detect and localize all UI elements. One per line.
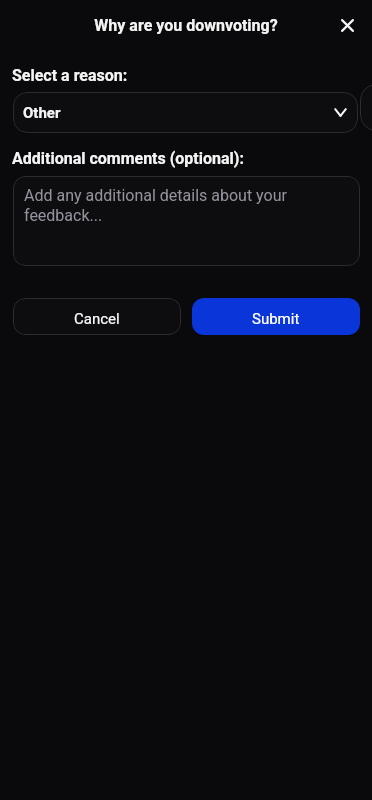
staticText: Add any additional details about your fe… [24, 186, 349, 225]
button[interactable]: Other [13, 92, 358, 133]
button[interactable]: Submit [192, 298, 360, 335]
button[interactable]: Cancel [13, 298, 181, 335]
staticText: Additional comments (optional): [12, 149, 244, 168]
button[interactable]: Close [333, 11, 361, 39]
staticText: Submit [252, 310, 300, 328]
staticText: Why are you downvoting? [0, 16, 372, 35]
staticText: Cancel [74, 310, 120, 328]
button[interactable]: Add any additional details about your fe… [13, 176, 360, 266]
staticText: Select a reason: [12, 66, 128, 85]
button[interactable]: More reasons [360, 84, 372, 131]
staticText: Other [23, 104, 61, 122]
